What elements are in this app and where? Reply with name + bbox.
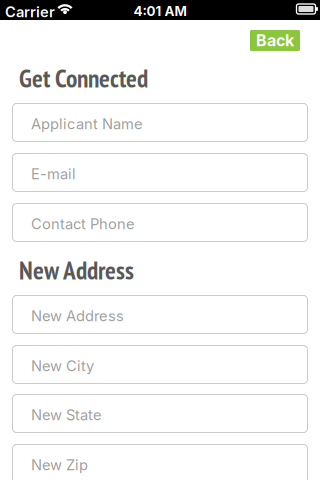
- staticText: Carrier: [5, 3, 55, 21]
- staticText: Back: [256, 31, 294, 50]
- staticText: Applicant Name: [31, 115, 143, 133]
- button[interactable]: New Zip: [12, 444, 308, 480]
- staticText: New State: [31, 406, 102, 424]
- button[interactable]: New State: [12, 394, 308, 433]
- staticText: New Zip: [31, 456, 88, 474]
- staticText: New Address: [31, 307, 124, 325]
- button[interactable]: Applicant Name: [12, 103, 308, 142]
- staticText: Get Connected: [19, 62, 148, 94]
- staticText: Contact Phone: [31, 215, 135, 233]
- staticText: 4:01 AM: [133, 3, 186, 19]
- staticText: New Address: [19, 254, 134, 286]
- button[interactable]: New City: [12, 345, 308, 384]
- button[interactable]: Contact Phone: [12, 203, 308, 242]
- staticText: New City: [31, 357, 94, 375]
- button[interactable]: New Address: [12, 295, 308, 334]
- button[interactable]: E-mail: [12, 153, 308, 192]
- button[interactable]: Back: [250, 30, 300, 51]
- staticText: E-mail: [31, 165, 76, 183]
